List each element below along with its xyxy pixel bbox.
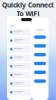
staticText: To WiFi [16,9,39,18]
staticText: Quickly Connect [2,0,54,9]
